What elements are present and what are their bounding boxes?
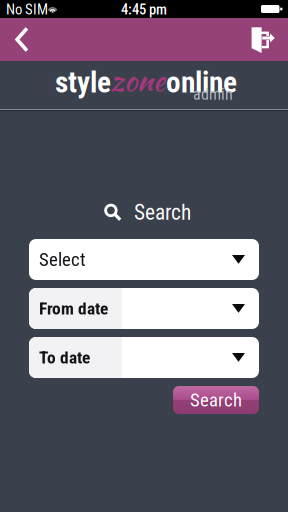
button[interactable]: Back	[0, 18, 44, 61]
staticText: admin	[193, 85, 233, 104]
button[interactable]: To date	[29, 337, 259, 378]
staticText: Search	[134, 200, 191, 225]
staticText: online	[166, 65, 237, 100]
staticText: zone	[110, 59, 165, 102]
staticText: 4:45 pm	[121, 1, 167, 18]
button[interactable]: Sign out	[240, 18, 284, 61]
staticText: Search	[190, 389, 242, 411]
staticText: No SIM	[6, 1, 48, 18]
button[interactable]: Search	[173, 386, 259, 414]
staticText: Select	[39, 249, 86, 270]
staticText: To date	[39, 347, 90, 368]
button[interactable]: Select	[29, 239, 259, 280]
staticText: style	[55, 65, 111, 100]
button[interactable]: From date	[29, 288, 259, 329]
staticText: From date	[39, 298, 108, 319]
